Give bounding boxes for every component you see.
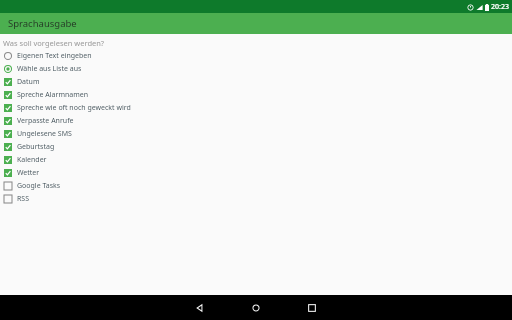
staticText: Ungelesene SMS — [17, 129, 72, 139]
button[interactable]: Datum — [0, 75, 512, 88]
button[interactable]: Spreche wie oft noch geweckt wird — [0, 101, 512, 114]
button[interactable]: Google Tasks — [0, 179, 512, 192]
button[interactable]: Home — [228, 295, 284, 320]
staticText: Datum — [17, 77, 40, 87]
staticText: 20:23 — [491, 2, 509, 12]
staticText: Kalender — [17, 155, 47, 165]
button[interactable]: Geburtstag — [0, 140, 512, 153]
button[interactable]: Wähle aus Liste aus — [0, 62, 512, 75]
button[interactable]: Back — [172, 295, 228, 320]
staticText: Spreche wie oft noch geweckt wird — [17, 103, 131, 113]
staticText: Wähle aus Liste aus — [17, 64, 82, 74]
button[interactable]: Wetter — [0, 166, 512, 179]
staticText: Google Tasks — [17, 181, 61, 191]
staticText: Geburtstag — [17, 142, 55, 152]
button[interactable]: Kalender — [0, 153, 512, 166]
staticText: Was soll vorgelesen werden? — [3, 38, 105, 48]
button[interactable]: Spreche Alarmnamen — [0, 88, 512, 101]
staticText: Eigenen Text eingeben — [17, 51, 92, 61]
button[interactable]: RSS — [0, 192, 512, 205]
button[interactable]: Ungelesene SMS — [0, 127, 512, 140]
button[interactable]: Verpasste Anrufe — [0, 114, 512, 127]
staticText: Sprachausgabe — [8, 17, 77, 30]
staticText: Verpasste Anrufe — [17, 116, 74, 126]
button[interactable]: Eigenen Text eingeben — [0, 49, 512, 62]
staticText: Spreche Alarmnamen — [17, 90, 89, 100]
staticText: Wetter — [17, 168, 40, 178]
staticText: RSS — [17, 194, 30, 204]
button[interactable]: Recent apps — [284, 295, 340, 320]
